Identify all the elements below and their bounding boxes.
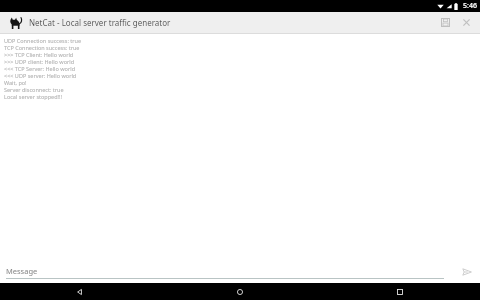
staticText: Message <box>6 266 38 276</box>
staticText: Local server stopped!!! <box>4 93 63 100</box>
staticText: Wait, po! <box>4 79 27 86</box>
staticText: <<< TCP Server: Hello world <box>4 65 76 72</box>
button[interactable]: Close <box>456 12 477 33</box>
button[interactable]: Send <box>454 261 480 283</box>
button[interactable]: Recent apps <box>320 283 480 300</box>
staticText: >>> UDP client: Hello world <box>4 58 75 65</box>
staticText: 5:46 <box>463 1 477 11</box>
button[interactable]: Home <box>160 283 320 300</box>
staticText: <<< UDP server: Hello world <box>4 72 77 79</box>
staticText: >>> TCP Client: Hello world <box>4 51 74 58</box>
button[interactable]: Message <box>6 266 444 279</box>
staticText: TCP Connection success: true <box>4 44 80 51</box>
staticText: UDP Connection success: true <box>4 37 82 44</box>
button[interactable]: App icon <box>5 13 24 32</box>
staticText: Server disconnect: true <box>4 86 64 93</box>
button[interactable]: Save <box>435 12 456 33</box>
staticText: NetCat - Local server traffic generator <box>29 17 171 28</box>
button[interactable]: Back <box>0 283 160 300</box>
